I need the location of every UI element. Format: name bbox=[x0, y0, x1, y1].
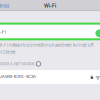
staticText: Settings bbox=[0, 3, 9, 8]
staticText: Wi-Fi bbox=[44, 3, 56, 9]
staticText: Wi-Fi network connections have been turn… bbox=[0, 43, 94, 48]
staticText: HUAWEI-B310-5C2A bbox=[0, 74, 36, 79]
button[interactable]: HUAWEI-B310-5C2A bbox=[0, 0, 100, 14]
button[interactable]: Settings bbox=[0, 0, 17, 5]
staticText: CHOOSE A NETWORK… bbox=[0, 61, 38, 66]
button[interactable]: Wi-Fi bbox=[0, 0, 100, 14]
staticText: in Control Center. bbox=[0, 50, 16, 55]
staticText: Wi-Fi bbox=[0, 30, 6, 35]
